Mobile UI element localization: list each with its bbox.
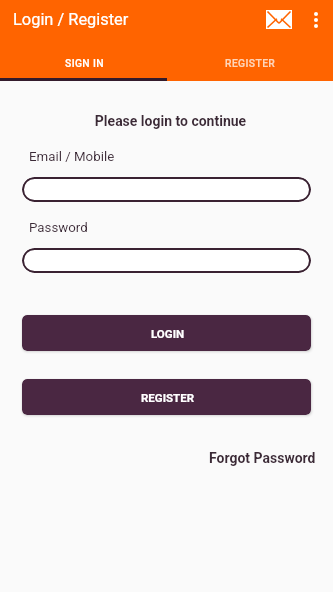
button[interactable]: Messages — [258, 0, 300, 40]
staticText: REGISTER — [225, 57, 276, 69]
staticText: Please login to continue — [4, 113, 333, 129]
staticText: Email / Mobile — [29, 149, 115, 165]
staticText: REGISTER — [141, 391, 195, 404]
button[interactable]: REGISTER — [166, 45, 333, 80]
button[interactable]: LOGIN — [22, 315, 311, 351]
button[interactable] — [22, 248, 311, 273]
button[interactable]: REGISTER — [22, 379, 311, 415]
staticText: SIGN IN — [65, 57, 105, 69]
button[interactable]: Forgot Password — [209, 446, 333, 470]
button[interactable] — [22, 177, 311, 202]
staticText: Password — [29, 220, 88, 236]
button[interactable]: SIGN IN — [0, 45, 166, 80]
staticText: LOGIN — [151, 327, 185, 340]
staticText: Forgot Password — [209, 450, 316, 466]
staticText: Login / Register — [13, 10, 129, 29]
button[interactable]: More options — [300, 4, 332, 36]
